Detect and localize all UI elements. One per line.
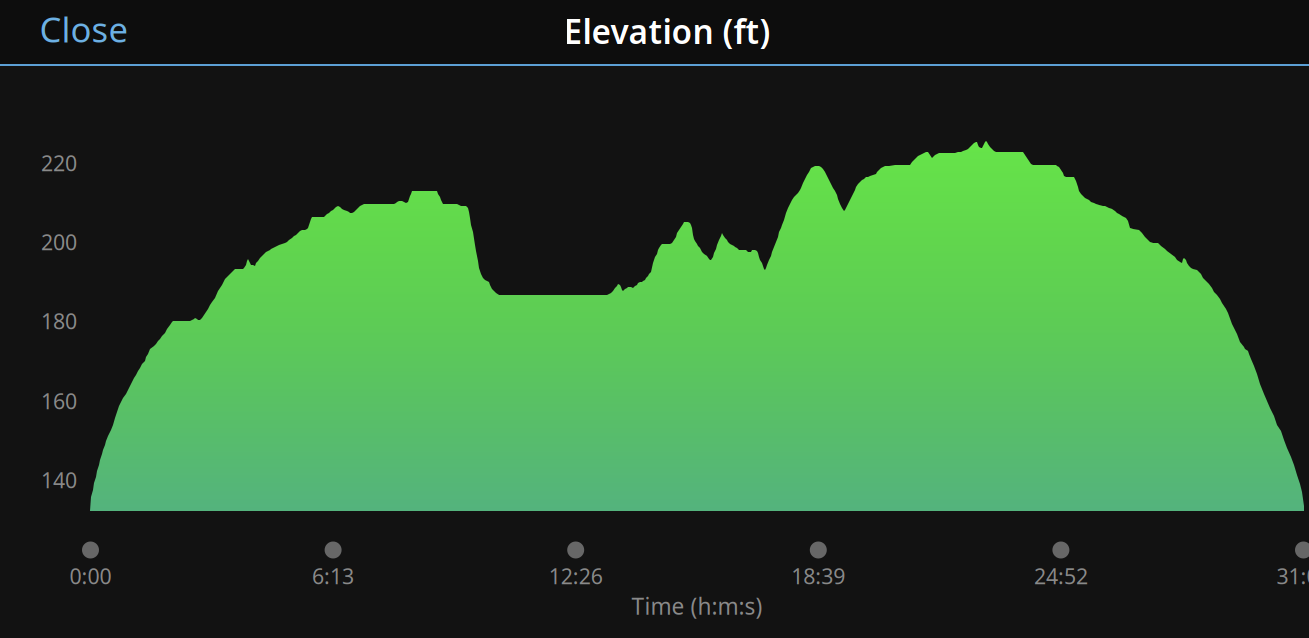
staticText: 6:13 xyxy=(312,562,354,590)
button[interactable]: Close xyxy=(23,0,144,64)
staticText: 0:00 xyxy=(69,562,111,590)
staticText: 160 xyxy=(41,387,77,415)
staticText: Close xyxy=(39,6,128,52)
staticText: 220 xyxy=(41,149,77,177)
staticText: Elevation (ft) xyxy=(563,9,770,53)
staticText: 31:05 xyxy=(1276,562,1309,590)
staticText: 140 xyxy=(41,466,77,494)
staticText: 200 xyxy=(41,228,77,256)
staticText: 12:26 xyxy=(549,562,603,590)
staticText: 24:52 xyxy=(1034,562,1088,590)
staticText: Time (h:m:s) xyxy=(631,591,762,621)
staticText: 18:39 xyxy=(791,562,845,590)
staticText: 180 xyxy=(41,307,77,335)
